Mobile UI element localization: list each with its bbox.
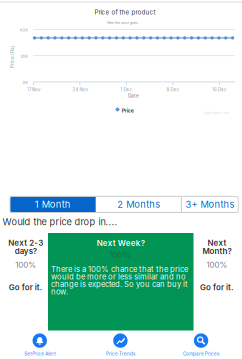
staticText: 100%	[206, 260, 227, 270]
staticText: highcharts.com	[204, 111, 229, 115]
staticText: Go for it.	[9, 283, 43, 292]
staticText: Go for it.	[200, 283, 234, 292]
staticText: Next	[207, 238, 226, 248]
staticText: 16 Dec	[212, 87, 227, 92]
staticText: Month?	[202, 246, 231, 256]
staticText: 8 Dec	[166, 87, 179, 92]
staticText: 24 Nov	[72, 87, 87, 92]
staticText: Price (Rs.)	[1, 54, 24, 59]
staticText: Would the price drop in....	[2, 216, 117, 227]
staticText: 17 Nov	[27, 87, 40, 92]
button[interactable]: 1 Month	[10, 196, 96, 212]
staticText: Set Price Alert	[24, 351, 55, 357]
staticText: 100%	[15, 260, 36, 270]
staticText: 40k	[19, 28, 27, 32]
staticText: Price Trends	[106, 351, 135, 357]
staticText: 1 Dec	[120, 87, 132, 92]
staticText: Price	[122, 107, 134, 114]
staticText: There is a 100% chance that the price wo…	[51, 265, 188, 296]
staticText: 100%	[110, 250, 131, 259]
staticText: Price of the product	[94, 8, 155, 16]
button[interactable]: 2 Months	[96, 196, 182, 212]
staticText: 2 Months	[117, 199, 160, 210]
staticText: Next 2-3	[8, 238, 43, 248]
button[interactable]: Compare Prices	[161, 333, 241, 359]
staticText: days?	[15, 246, 37, 256]
staticText: 1 Month	[35, 199, 71, 210]
button[interactable]: 3+ Months	[182, 196, 238, 212]
button[interactable]: Set Price Alert	[0, 333, 80, 359]
staticText: Here the price goes	[107, 21, 138, 25]
staticText: 0k	[22, 80, 27, 85]
staticText: Compare Prices	[183, 351, 219, 357]
staticText: Date	[128, 93, 139, 99]
staticText: 20k	[20, 54, 27, 59]
staticText: 3+ Months	[186, 199, 235, 210]
button[interactable]: Price Trends	[80, 333, 161, 359]
staticText: Next Week?	[97, 238, 145, 248]
